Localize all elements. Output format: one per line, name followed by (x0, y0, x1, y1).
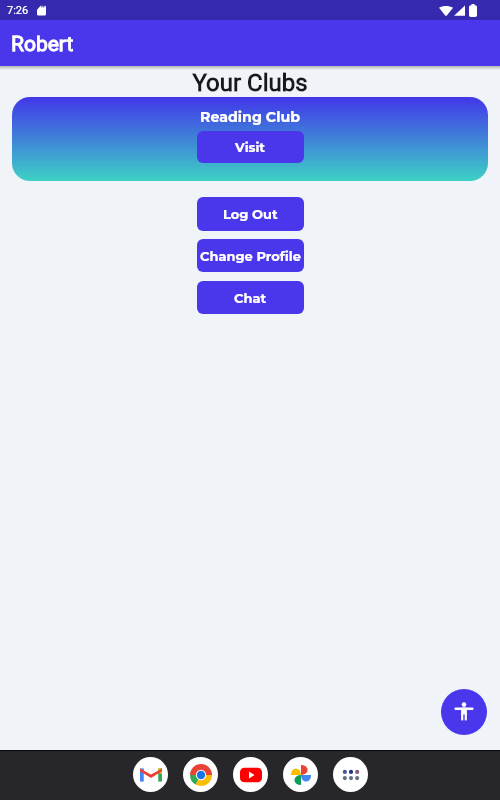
staticText: Log Out (223, 206, 278, 222)
staticText: Robert (11, 32, 74, 57)
staticText: 7:26 (7, 4, 29, 17)
button[interactable]: Chat (197, 281, 304, 314)
button[interactable]: All apps (333, 757, 368, 792)
button[interactable]: Chrome (183, 757, 218, 792)
button[interactable]: Change Profile (197, 239, 304, 272)
staticText: Reading Club (200, 108, 300, 125)
staticText: Chat (234, 290, 267, 306)
button[interactable]: Accessibility (441, 689, 487, 735)
button[interactable]: Photos (283, 757, 318, 792)
button[interactable]: Robert (0, 20, 500, 66)
button[interactable]: Gmail (133, 757, 168, 792)
button[interactable]: Log Out (197, 197, 304, 231)
staticText: Your Clubs (0, 69, 500, 97)
staticText: Visit (235, 139, 266, 155)
button[interactable]: YouTube (233, 757, 268, 792)
button[interactable]: Visit (197, 131, 304, 163)
button[interactable]: Reading Club (12, 97, 488, 181)
staticText: Change Profile (200, 248, 301, 264)
